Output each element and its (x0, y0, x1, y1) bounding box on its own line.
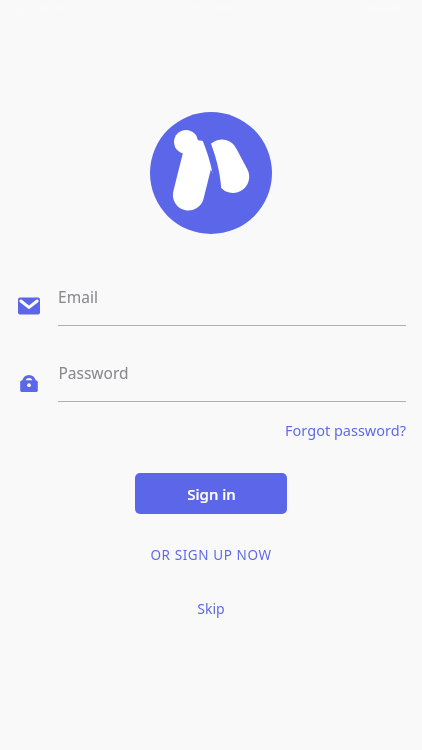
button[interactable]: Forgot password? (269, 414, 422, 446)
button[interactable]: Password (0, 362, 422, 402)
staticText: Sign in (187, 484, 236, 504)
staticText: Email (58, 286, 98, 307)
button[interactable]: Email (0, 286, 422, 326)
other: Email (16, 293, 42, 319)
button[interactable]: Skip (173, 593, 249, 624)
staticText: OR SIGN UP NOW (150, 546, 272, 564)
staticText: Skip (197, 599, 225, 618)
staticText: Forgot password? (285, 420, 406, 440)
staticText: Password (58, 362, 129, 383)
other: Password (16, 369, 42, 395)
button[interactable]: OR SIGN UP NOW (130, 540, 292, 570)
button[interactable]: Sign in (135, 473, 287, 514)
